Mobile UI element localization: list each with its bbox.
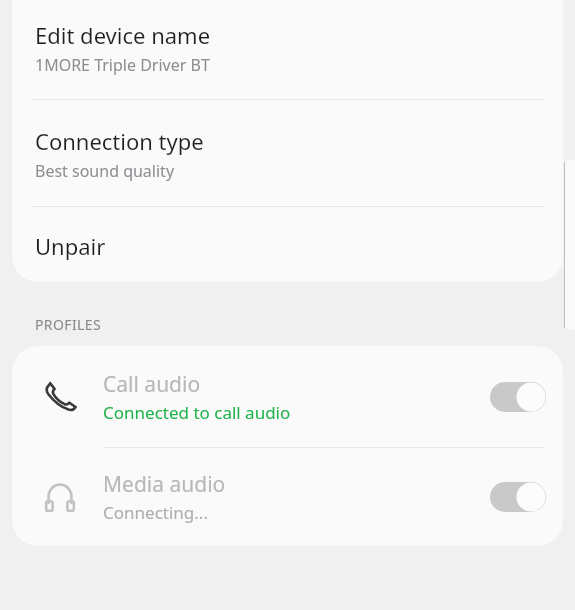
button[interactable]: Media audio (486, 475, 550, 519)
staticText: PROFILES (35, 315, 102, 334)
staticText: Unpair (35, 231, 106, 261)
staticText: Call audio (103, 370, 201, 399)
button[interactable]: Unpair (12, 207, 563, 282)
staticText: Media audio (103, 470, 226, 499)
staticText: Best sound quality (35, 160, 175, 182)
button[interactable]: Connection type (12, 100, 563, 206)
staticText: 1MORE Triple Driver BT (35, 54, 210, 76)
button[interactable]: Call audio (486, 375, 550, 419)
button[interactable]: Call audio (12, 346, 563, 447)
staticText: Connecting... (103, 501, 208, 524)
button[interactable]: Edit device name (12, 0, 563, 99)
staticText: Connected to call audio (103, 401, 291, 424)
staticText: Edit device name (35, 20, 211, 50)
staticText: Connection type (35, 126, 204, 156)
button[interactable]: Media audio (12, 448, 563, 546)
